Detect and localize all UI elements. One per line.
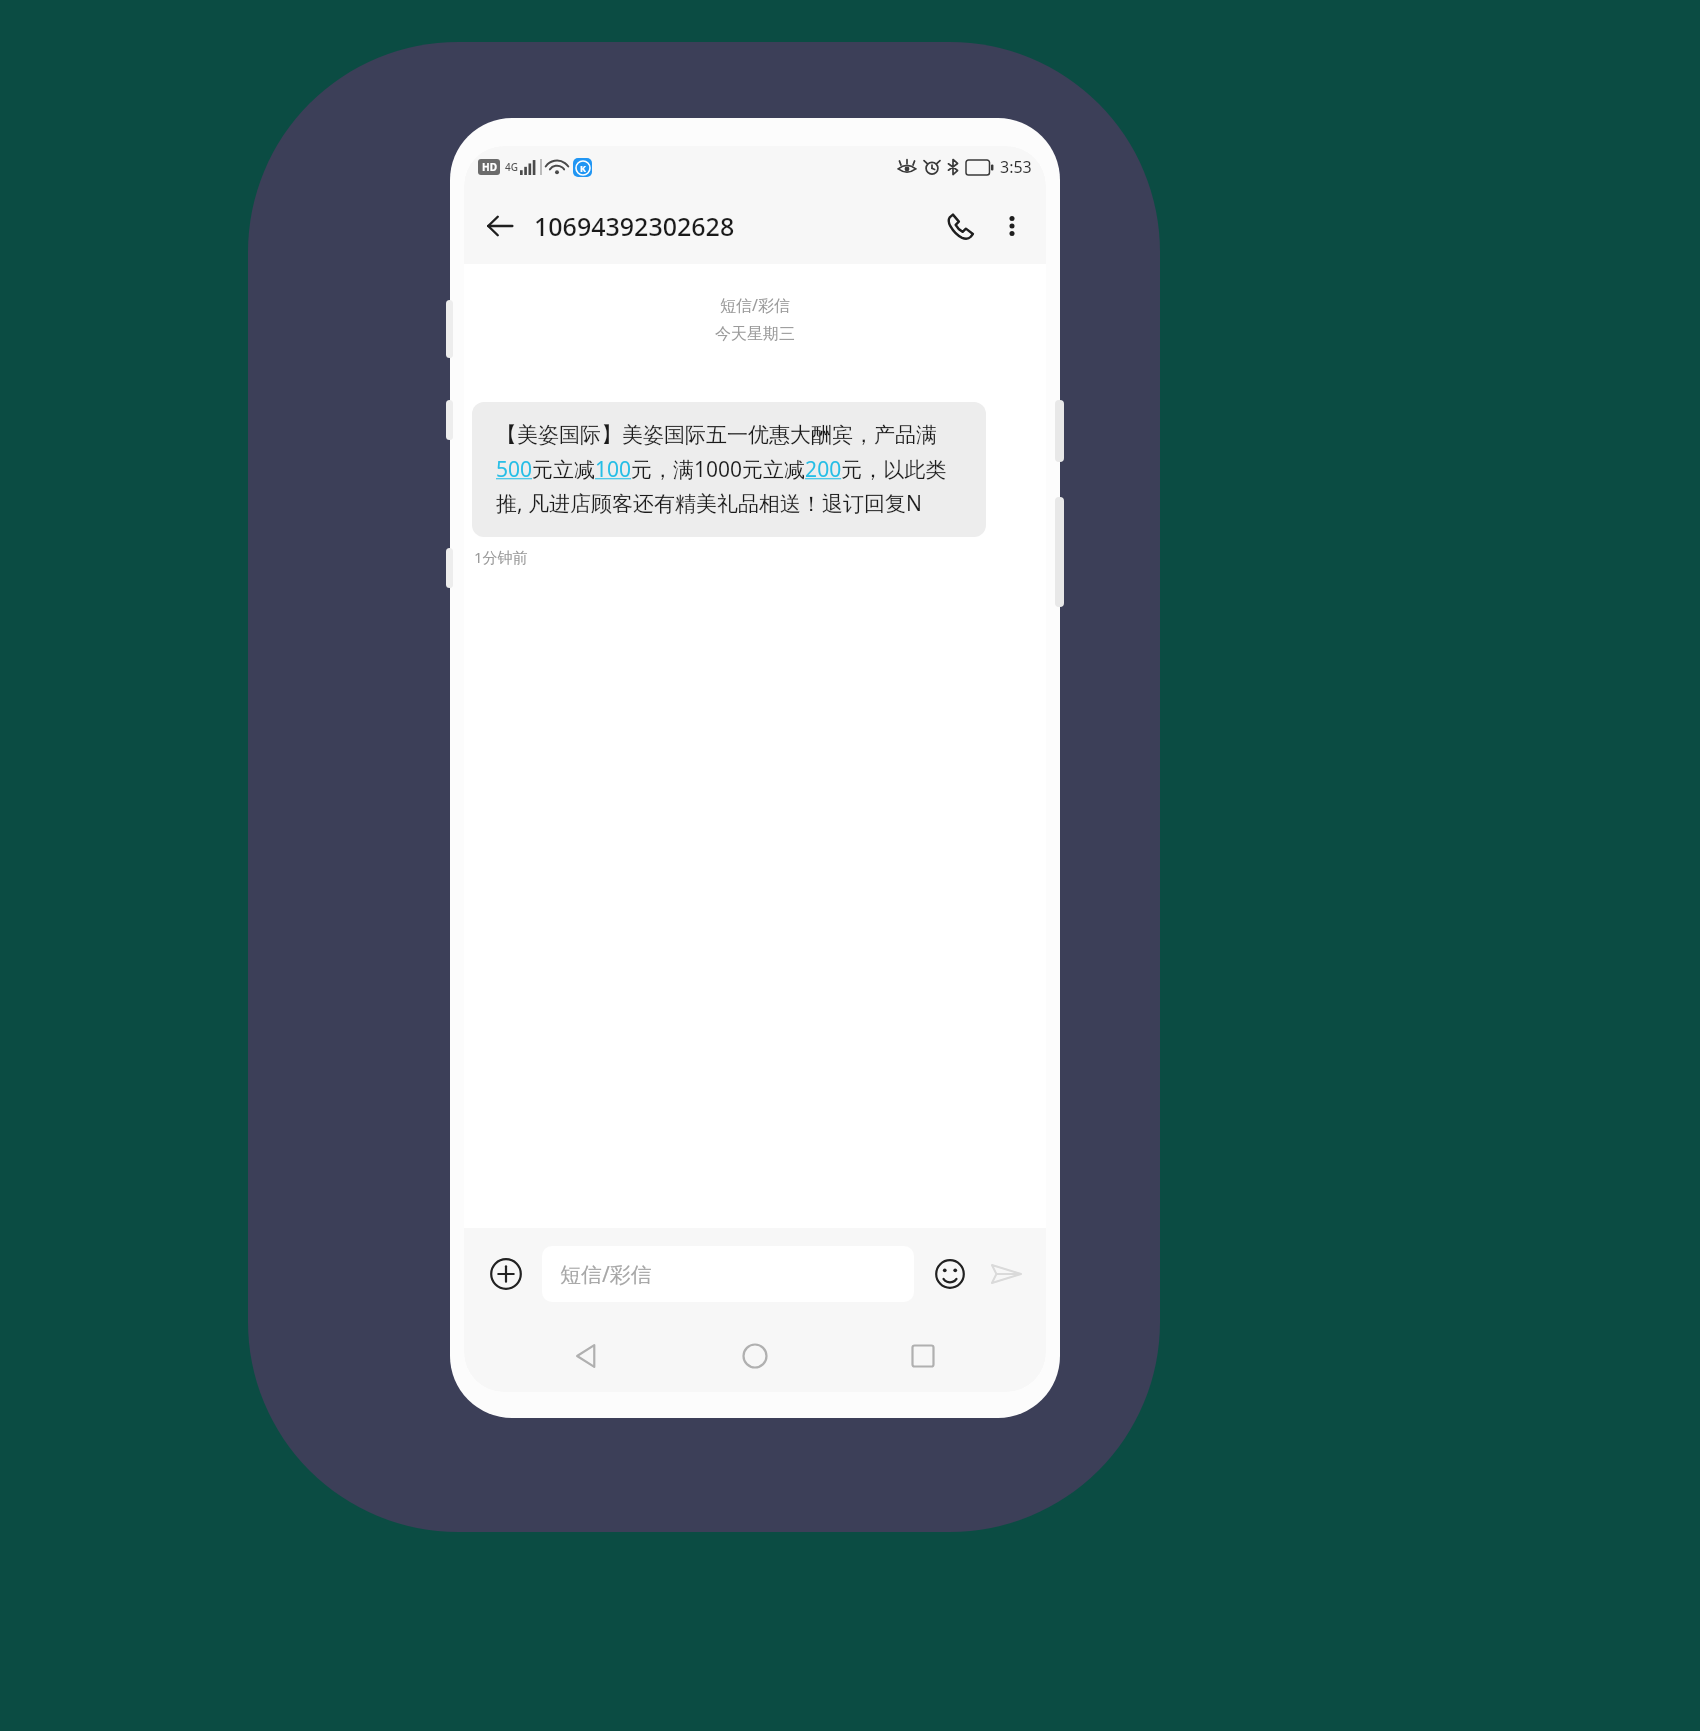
button[interactable]: 短信/彩信 bbox=[542, 1246, 914, 1302]
staticText: 短信/彩信 bbox=[720, 294, 790, 316]
button[interactable]: Back bbox=[542, 1324, 632, 1388]
button[interactable]: Add attachment bbox=[480, 1248, 532, 1300]
staticText: 1分钟前 bbox=[474, 547, 528, 567]
staticText: 3:53 bbox=[1000, 156, 1032, 178]
staticText: 今天星期三 bbox=[715, 324, 795, 344]
button[interactable]: Home bbox=[710, 1324, 800, 1388]
staticText: 10694392302628 bbox=[534, 209, 735, 243]
button[interactable]: Recent apps bbox=[878, 1324, 968, 1388]
button[interactable]: More options bbox=[990, 204, 1034, 248]
staticText: HD bbox=[482, 160, 497, 174]
staticText: 4G bbox=[505, 160, 518, 174]
staticText: 【美姿国际】美姿国际五一优惠大酬宾，产品满500元立减100元，满1000元立减… bbox=[496, 422, 962, 517]
button[interactable]: Emoji bbox=[926, 1250, 974, 1298]
staticText: K bbox=[580, 162, 586, 174]
staticText: 短信/彩信 bbox=[560, 1260, 652, 1289]
button[interactable]: 【美姿国际】美姿国际五一优惠大酬宾，产品满500元立减100元，满1000元立减… bbox=[472, 402, 986, 537]
button[interactable]: Back bbox=[476, 202, 524, 250]
button[interactable]: Call bbox=[936, 202, 984, 250]
button[interactable]: Send bbox=[982, 1250, 1030, 1298]
